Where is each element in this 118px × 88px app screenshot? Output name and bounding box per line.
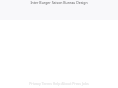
staticText: Inter Burger Saison Bureau Design: [0, 0, 118, 5]
staticText: Privacy Terms Help About Press Jobs: [0, 81, 118, 86]
